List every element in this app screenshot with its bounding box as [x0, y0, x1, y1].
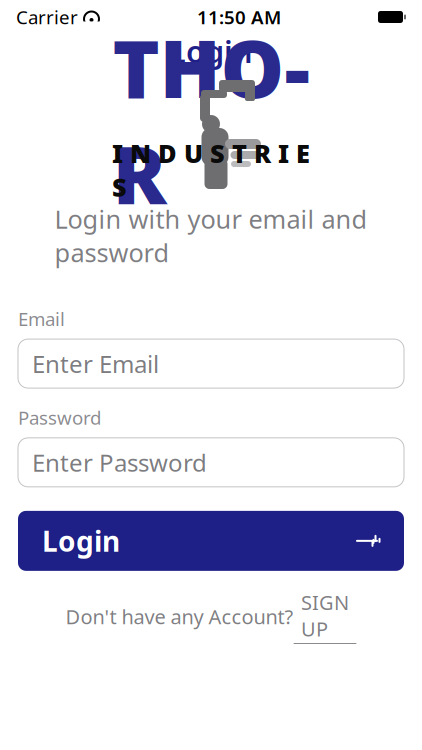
staticText: I N D U S T R I E S [112, 136, 310, 204]
staticText: Email [18, 306, 65, 331]
button[interactable]: Enter Email [18, 339, 404, 388]
button[interactable]: Enter Password [18, 438, 404, 487]
staticText: Don't have any Account? [65, 603, 293, 630]
staticText: Login [169, 31, 253, 71]
staticText: Enter Email [32, 348, 159, 379]
staticText: Carrier [16, 5, 78, 29]
button[interactable]: SIGN UP [293, 589, 356, 644]
staticText: THOR [112, 14, 309, 226]
staticText: Login [42, 522, 120, 559]
staticText: SIGN UP [301, 589, 349, 642]
staticText: Login with your email and password [54, 202, 367, 269]
staticText: Password [18, 405, 101, 430]
button[interactable]: Login [18, 511, 404, 571]
staticText: 11:50 AM [197, 5, 281, 29]
staticText: Enter Password [32, 446, 207, 478]
